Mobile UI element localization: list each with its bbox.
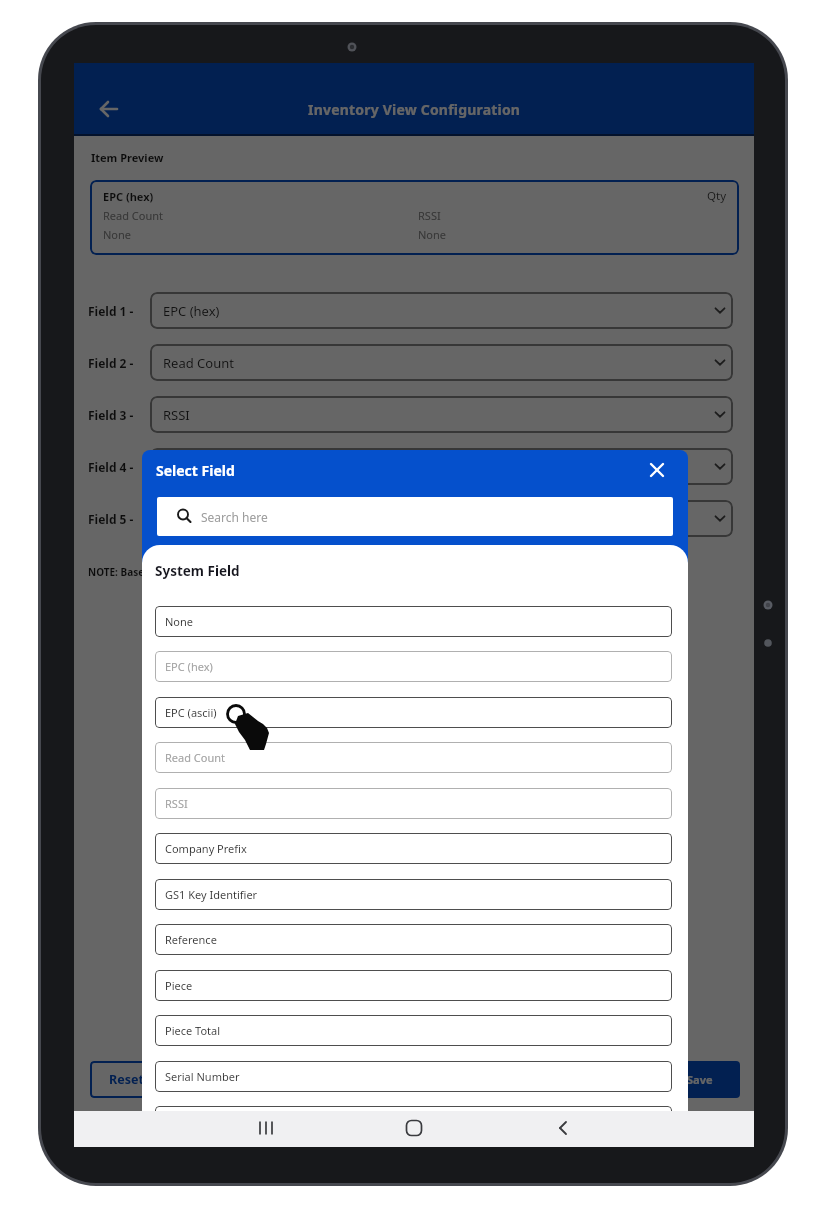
button[interactable]: RSSI: [155, 788, 672, 819]
staticText: Piece Total: [165, 1023, 221, 1038]
button[interactable]: EPC (ascii): [155, 697, 672, 728]
button[interactable]: Save: [660, 1061, 740, 1098]
button[interactable]: Search here: [157, 497, 673, 536]
staticText: EPC (hex): [165, 659, 213, 674]
staticText: None: [163, 458, 197, 476]
button[interactable]: [540, 1111, 584, 1147]
staticText: RSSI: [418, 208, 441, 223]
button[interactable]: RSSI: [150, 396, 733, 433]
button[interactable]: Reset: [90, 1061, 162, 1098]
button[interactable]: Read Count: [150, 344, 733, 381]
staticText: Item Preview: [91, 150, 164, 164]
staticText: Piece: [165, 978, 193, 993]
staticText: Reference: [165, 932, 217, 947]
button[interactable]: Lot Number: [155, 1106, 672, 1111]
staticText: Field 4 -: [88, 459, 134, 475]
button[interactable]: None: [155, 606, 672, 637]
button[interactable]: None: [150, 448, 733, 485]
staticText: None: [163, 510, 197, 528]
staticText: NOTE: Based on the field selection the i…: [88, 565, 388, 579]
button[interactable]: GS1 Key Identifier: [155, 879, 672, 910]
staticText: None: [103, 227, 132, 242]
staticText: Qty: [707, 188, 726, 204]
button[interactable]: [647, 460, 667, 480]
staticText: Search here: [201, 509, 268, 525]
staticText: Inventory View Configuration: [308, 100, 521, 119]
staticText: Read Count: [165, 750, 226, 765]
button[interactable]: Serial Number: [155, 1061, 672, 1092]
button[interactable]: Piece Total: [155, 1015, 672, 1046]
staticText: GS1 Key Identifier: [165, 887, 258, 902]
staticText: Field 1 -: [88, 303, 134, 319]
button[interactable]: EPC (hex): [150, 292, 733, 329]
staticText: Company Prefix: [165, 841, 247, 856]
staticText: System Field: [155, 562, 240, 580]
staticText: RSSI: [165, 796, 188, 811]
button[interactable]: Piece: [155, 970, 672, 1001]
staticText: Select Field: [156, 461, 235, 480]
staticText: Field 2 -: [88, 355, 134, 371]
button[interactable]: [94, 94, 124, 124]
staticText: RSSI: [163, 406, 190, 424]
staticText: EPC (hex): [163, 302, 220, 320]
button[interactable]: Read Count: [155, 742, 672, 773]
staticText: Read Count: [103, 208, 164, 223]
button[interactable]: None: [150, 500, 733, 537]
button[interactable]: EPC (hex): [155, 651, 672, 682]
staticText: Serial Number: [165, 1069, 240, 1084]
staticText: EPC (ascii): [165, 705, 217, 720]
staticText: None: [418, 227, 447, 242]
staticText: None: [165, 614, 194, 629]
staticText: Field 5 -: [88, 511, 134, 527]
staticText: Reset: [109, 1071, 144, 1088]
staticText: Field 3 -: [88, 407, 134, 423]
staticText: Save: [687, 1072, 713, 1087]
button[interactable]: Reference: [155, 924, 672, 955]
staticText: EPC (hex): [103, 189, 154, 204]
button[interactable]: Company Prefix: [155, 833, 672, 864]
button[interactable]: [392, 1111, 436, 1147]
button[interactable]: [244, 1111, 288, 1147]
staticText: Read Count: [163, 354, 234, 372]
